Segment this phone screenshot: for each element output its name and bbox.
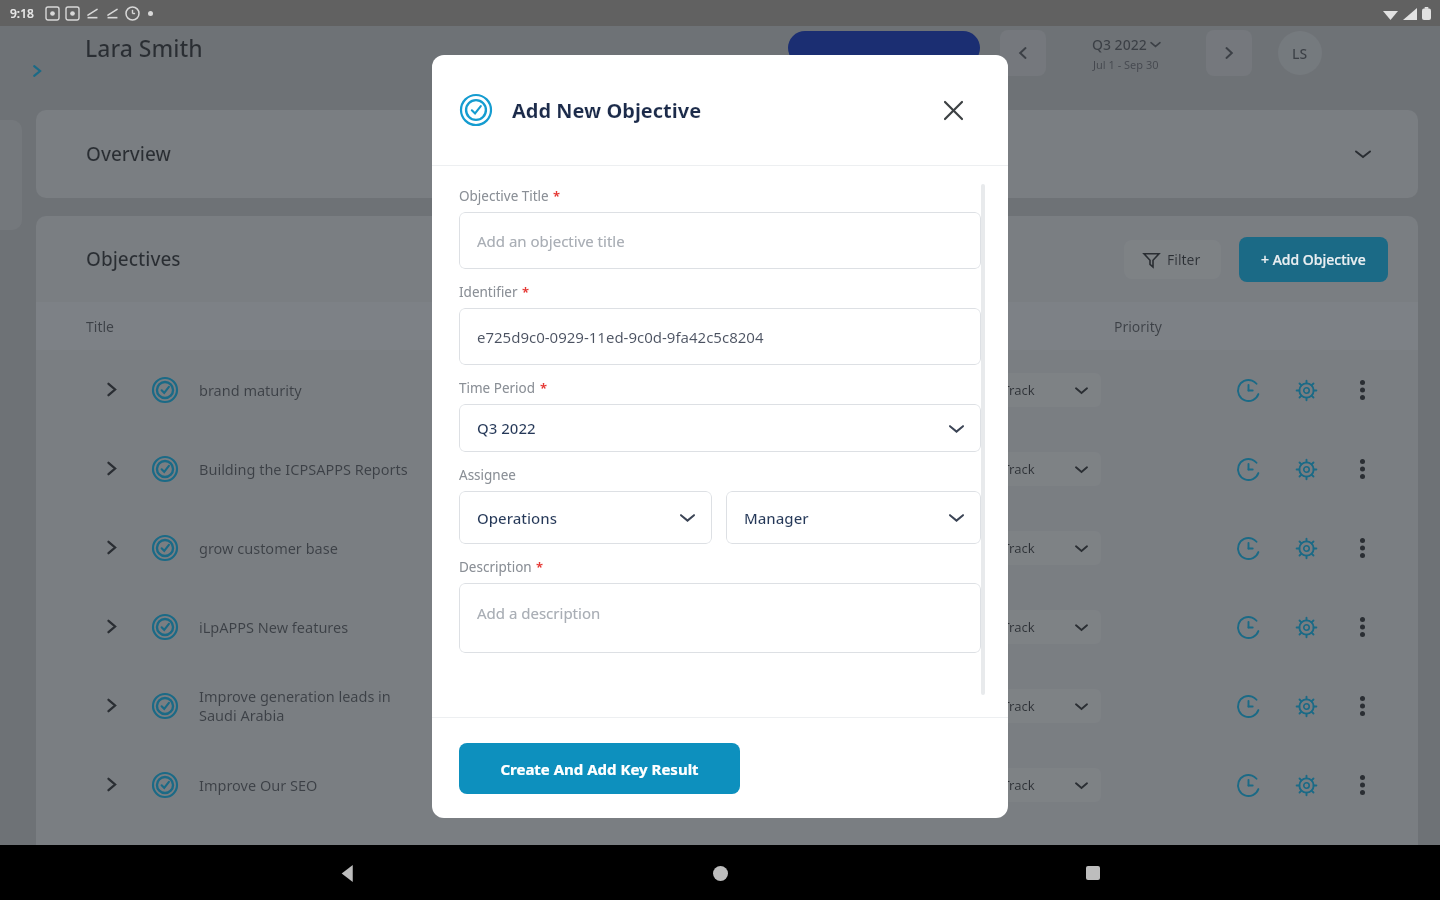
button[interactable]: Improve Our SEO (36, 745, 1418, 824)
staticText: iLpAPPS New features (199, 617, 349, 637)
staticText: + Add Objective (1261, 250, 1366, 269)
staticText: Q3 2022 (477, 418, 536, 438)
staticText: Off Track (980, 776, 1035, 794)
staticText: Off Track (980, 381, 1035, 399)
button[interactable]: Settings (1288, 530, 1324, 566)
button[interactable]: More options (1344, 767, 1380, 803)
button[interactable]: History (1230, 451, 1266, 487)
staticText: Objective Title (459, 187, 549, 205)
button[interactable]: More options (1344, 530, 1380, 566)
button[interactable]: Building the ICPSAPPS Reports (36, 429, 1418, 508)
staticText: Priority (1114, 317, 1162, 336)
button[interactable]: Create And Add Key Result (459, 743, 740, 794)
staticText: Building the ICPSAPPS Reports (199, 459, 408, 479)
button[interactable] (788, 31, 980, 65)
staticText: * (536, 558, 544, 576)
staticText: grow customer base (199, 538, 338, 558)
button[interactable]: LS (1278, 31, 1322, 75)
button[interactable]: Settings (1288, 767, 1324, 803)
staticText: Operations (477, 508, 557, 528)
staticText: Manager (744, 508, 809, 528)
button[interactable]: Off Track (966, 768, 1101, 802)
staticText: Add New Objective (512, 97, 702, 124)
button[interactable]: Back (323, 848, 373, 898)
button[interactable]: History (1230, 530, 1266, 566)
button[interactable]: Close (936, 93, 970, 127)
button[interactable]: e725d9c0-0929-11ed-9c0d-9fa42c5c8204 (459, 308, 981, 365)
button[interactable]: More options (1344, 688, 1380, 724)
staticText: Title (86, 317, 114, 336)
button[interactable]: iLpAPPS New features (36, 587, 1418, 666)
staticText: Off Track (980, 697, 1035, 715)
button[interactable]: History (1230, 609, 1266, 645)
staticText: Identifier (459, 283, 518, 301)
button[interactable]: Settings (1288, 609, 1324, 645)
button[interactable]: + Add Objective (1239, 237, 1388, 282)
button[interactable]: Add a description (459, 583, 981, 653)
staticText: Filter (1167, 250, 1201, 269)
button[interactable]: brand maturity (36, 350, 1418, 429)
staticText: Q3 2022 (1092, 35, 1147, 54)
button[interactable]: Settings (1288, 451, 1324, 487)
button[interactable]: History (1230, 372, 1266, 408)
button[interactable]: Q3 2022 (459, 404, 981, 452)
button[interactable]: Off Track (966, 531, 1101, 565)
button[interactable]: Next period (1206, 30, 1252, 76)
staticText: Lara Smith (85, 32, 203, 63)
staticText: Assignee (459, 466, 516, 484)
button[interactable]: Home (695, 848, 745, 898)
button[interactable]: Overview (36, 110, 1418, 198)
button[interactable]: Off Track (966, 610, 1101, 644)
staticText: * (522, 283, 530, 301)
staticText: Improve Our SEO (199, 775, 318, 795)
button[interactable]: Off Track (966, 452, 1101, 486)
button[interactable]: Manager (726, 491, 981, 544)
button[interactable]: Settings (1288, 372, 1324, 408)
button[interactable]: Recents (1068, 848, 1118, 898)
staticText: Time Period (459, 379, 536, 397)
staticText: Overview (86, 141, 171, 167)
staticText: 9:18 (10, 5, 34, 21)
staticText: Description (459, 558, 532, 576)
staticText: e725d9c0-0929-11ed-9c0d-9fa42c5c8204 (477, 327, 764, 347)
staticText: Improve generation leads in Saudi Arabia (199, 686, 391, 725)
staticText: Off Track (980, 460, 1035, 478)
button[interactable]: Off Track (966, 373, 1101, 407)
staticText: Create And Add Key Result (500, 759, 699, 779)
staticText: * (553, 187, 561, 205)
button[interactable]: Settings (1288, 688, 1324, 724)
staticText: Add an objective title (477, 231, 625, 251)
staticText: * (540, 379, 548, 397)
staticText: Off Track (980, 618, 1035, 636)
button[interactable]: grow customer base (36, 508, 1418, 587)
staticText: brand maturity (199, 380, 302, 400)
button[interactable]: Off Track (966, 689, 1101, 723)
button[interactable]: History (1230, 767, 1266, 803)
staticText: Add a description (477, 603, 601, 623)
button[interactable]: History (1230, 688, 1266, 724)
button[interactable]: Operations (459, 491, 712, 544)
button[interactable]: Previous period (1000, 30, 1046, 76)
button[interactable]: More options (1344, 609, 1380, 645)
staticText: LS (1292, 44, 1308, 63)
staticText: Off Track (980, 539, 1035, 557)
button[interactable]: Improve generation leads in Saudi Arabia (36, 666, 1418, 745)
button[interactable]: More options (1344, 451, 1380, 487)
staticText: Jul 1 - Sep 30 (1093, 57, 1159, 72)
staticText: Objectives (86, 246, 181, 272)
button[interactable]: Filter (1124, 240, 1221, 279)
button[interactable]: Add an objective title (459, 212, 981, 269)
button[interactable]: More options (1344, 372, 1380, 408)
